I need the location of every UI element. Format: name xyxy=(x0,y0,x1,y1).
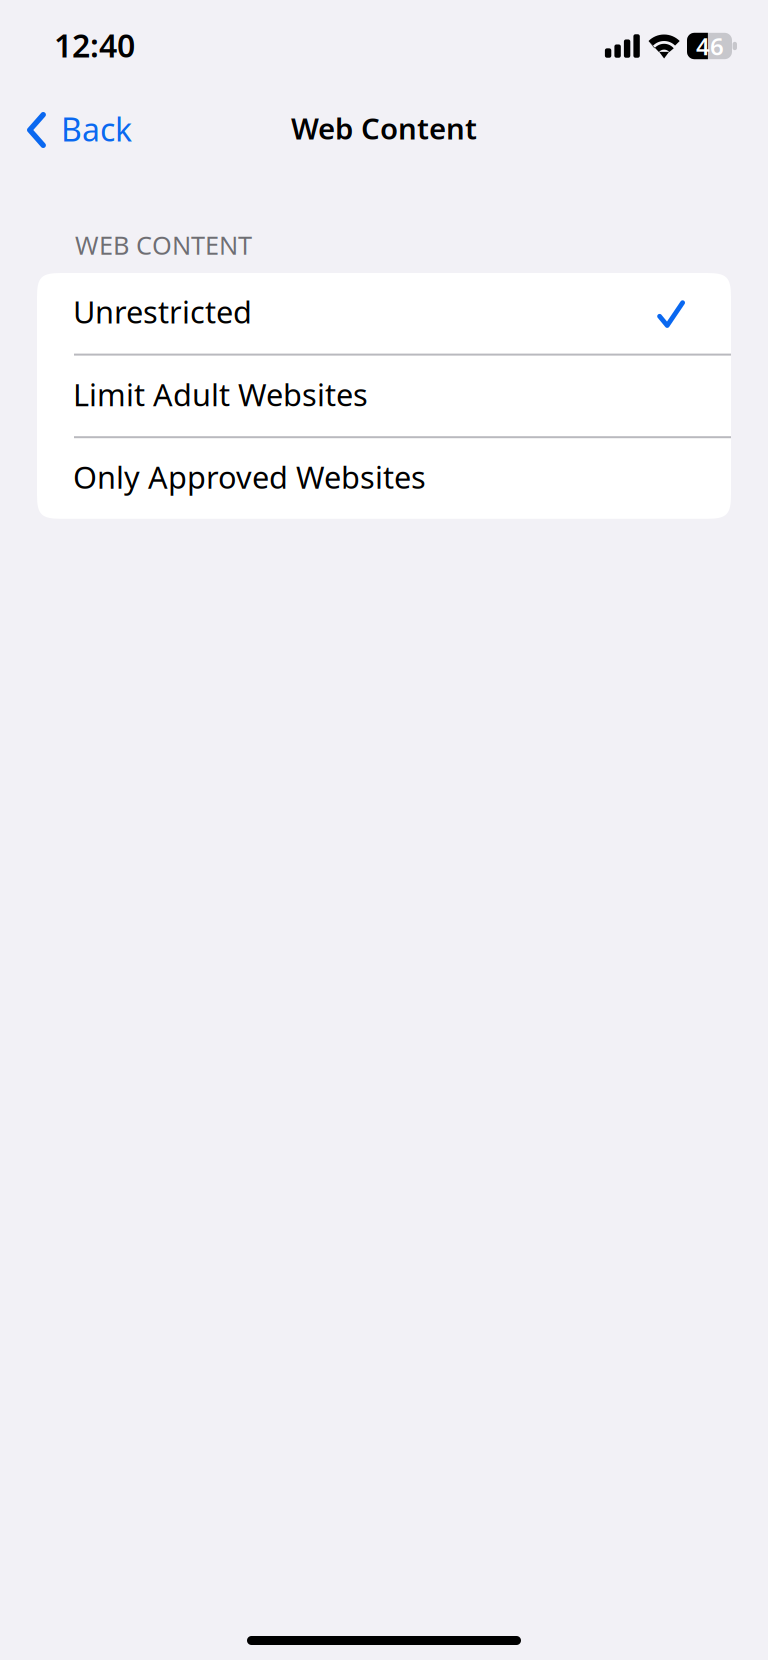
staticText: Limit Adult Websites xyxy=(73,374,368,415)
staticText: Only Approved Websites xyxy=(73,456,426,497)
staticText: Back xyxy=(61,108,132,150)
button[interactable]: Limit Adult Websites xyxy=(37,356,731,436)
button[interactable]: Only Approved Websites xyxy=(37,438,731,519)
button[interactable]: Back xyxy=(0,90,148,166)
staticText: WEB CONTENT xyxy=(75,228,252,262)
staticText: Web Content xyxy=(291,108,477,147)
staticText: 12:40 xyxy=(54,24,135,66)
staticText: Unrestricted xyxy=(73,291,252,332)
button[interactable]: Unrestricted xyxy=(37,273,731,354)
staticText: 46 xyxy=(696,30,724,62)
